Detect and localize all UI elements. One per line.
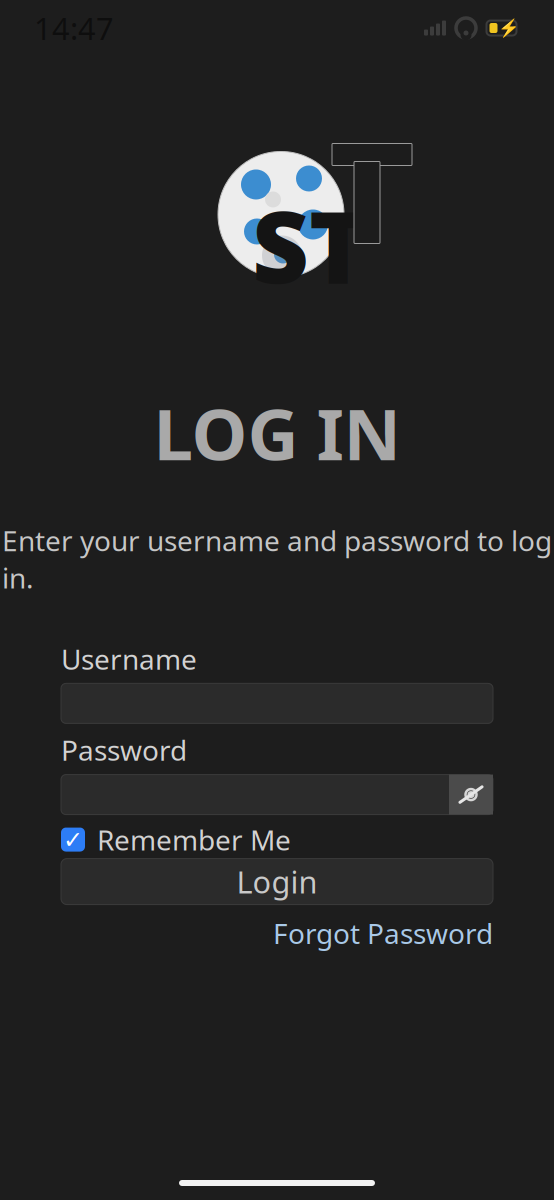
staticText: ⚡ bbox=[497, 18, 519, 38]
staticText: ✓ bbox=[63, 826, 83, 853]
staticText: Username bbox=[61, 640, 197, 677]
staticText: ST bbox=[252, 179, 367, 310]
button[interactable]: Show password bbox=[449, 775, 493, 815]
button[interactable]: ✓ bbox=[61, 823, 493, 857]
staticText: Enter your username and password to log … bbox=[2, 522, 552, 596]
staticText: Remember Me bbox=[97, 821, 291, 858]
staticText: LOG IN bbox=[153, 386, 400, 480]
staticText: Password bbox=[61, 731, 187, 769]
staticText: Login bbox=[236, 861, 317, 902]
button[interactable]: Login bbox=[61, 859, 493, 905]
staticText: 14:47 bbox=[34, 8, 114, 48]
staticText: Forgot Password bbox=[273, 915, 493, 952]
button[interactable]: Forgot Password bbox=[273, 915, 493, 952]
